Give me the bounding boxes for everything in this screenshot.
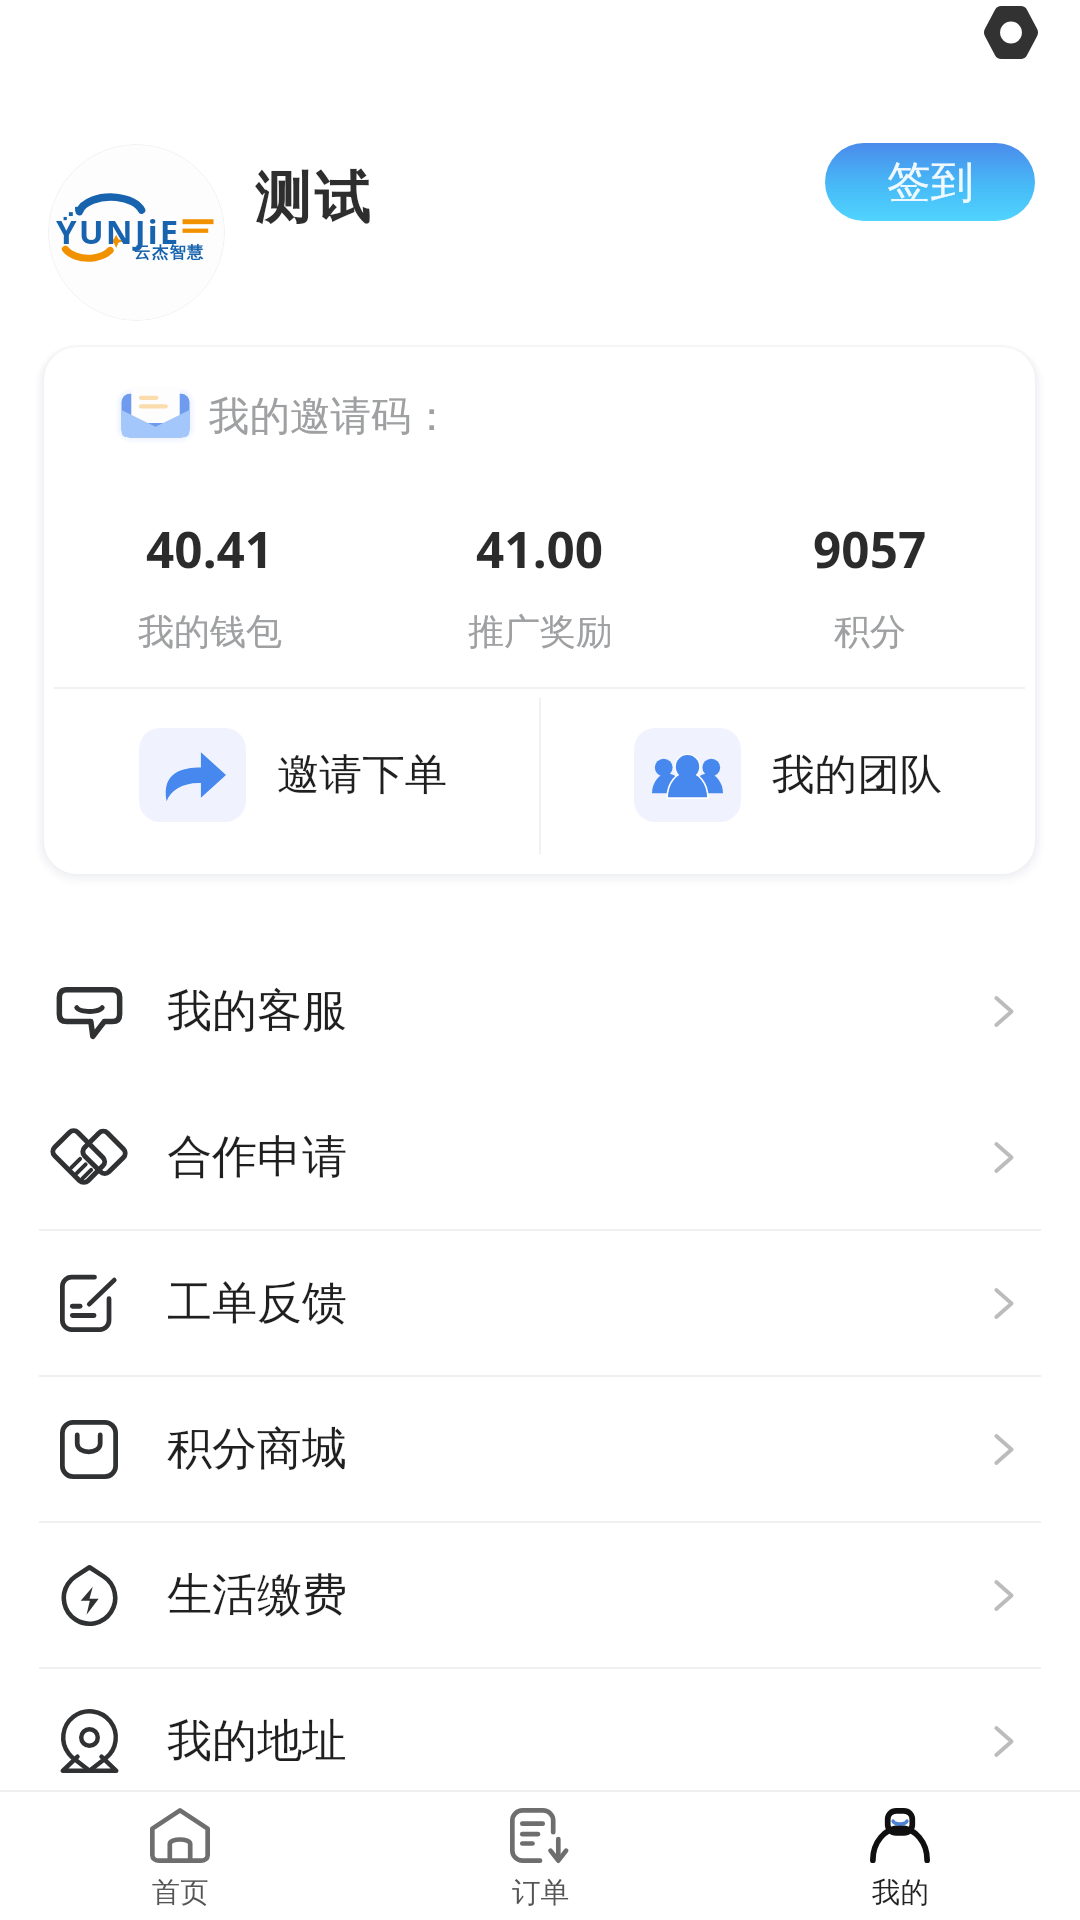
staticText: 9057: [813, 515, 927, 582]
button[interactable]: 邀请下单: [44, 698, 539, 851]
staticText: 订单: [512, 1875, 569, 1911]
button[interactable]: 40.41: [44, 515, 375, 654]
staticText: 云杰智慧: [134, 242, 205, 262]
button[interactable]: 合作申请: [0, 1084, 1080, 1230]
staticText: 我的客服: [167, 983, 347, 1040]
staticText: 推广奖励: [468, 609, 612, 654]
button[interactable]: Avatar: [48, 144, 225, 321]
staticText: 我的团队: [772, 748, 943, 802]
staticText: 积分商城: [167, 1421, 347, 1478]
staticText: 41.00: [476, 515, 604, 582]
button[interactable]: Settings: [972, 0, 1050, 71]
staticText: 我的地址: [167, 1713, 347, 1770]
button[interactable]: 我的地址: [0, 1668, 1080, 1814]
staticText: 我的: [872, 1875, 929, 1911]
staticText: 邀请下单: [277, 748, 448, 802]
button[interactable]: 工单反馈: [0, 1230, 1080, 1376]
staticText: 合作申请: [167, 1129, 347, 1186]
staticText: 积分: [834, 609, 906, 654]
button[interactable]: 41.00: [375, 515, 705, 654]
staticText: 我的邀请码：: [209, 391, 452, 442]
staticText: 我的钱包: [138, 609, 282, 654]
button[interactable]: 我的: [720, 1792, 1080, 1920]
staticText: 40.41: [146, 515, 274, 582]
staticText: 工单反馈: [167, 1275, 347, 1332]
staticText: 生活缴费: [167, 1567, 347, 1624]
button[interactable]: 我的客服: [0, 938, 1080, 1084]
button[interactable]: 订单: [360, 1792, 720, 1920]
staticText: 首页: [152, 1875, 209, 1911]
button[interactable]: 首页: [0, 1792, 360, 1920]
staticText: YUNJiE: [56, 209, 181, 254]
button[interactable]: 积分商城: [0, 1376, 1080, 1522]
button[interactable]: 9057: [705, 515, 1035, 654]
staticText: 测试: [255, 164, 374, 234]
button[interactable]: 签到: [825, 143, 1035, 221]
staticText: 签到: [887, 155, 974, 210]
button[interactable]: 我的团队: [539, 698, 1035, 851]
button[interactable]: 生活缴费: [0, 1522, 1080, 1668]
